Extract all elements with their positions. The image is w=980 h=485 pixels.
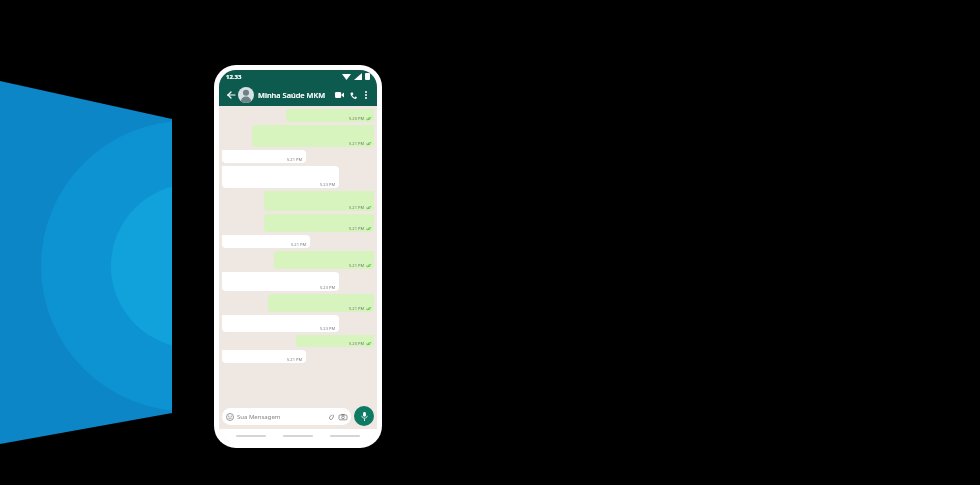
staticText: 5.21 PM [287, 357, 303, 362]
button[interactable]: Contact avatar [238, 87, 254, 103]
button[interactable]: Call [346, 88, 360, 102]
button[interactable]: 5.21 PM [252, 125, 374, 147]
staticText: 5.21 PM [349, 263, 365, 268]
staticText: 5.20 PM [349, 116, 365, 121]
staticText: Sua Mensagem [237, 413, 281, 421]
button[interactable]: 5.21 PM [264, 191, 374, 211]
staticText: Minha Saúde MKM [258, 90, 326, 100]
button[interactable]: Sua Mensagem [222, 408, 351, 425]
button[interactable]: 5.23 PM [222, 166, 339, 188]
staticText: 5.21 PM [349, 141, 365, 146]
button[interactable]: Video call [332, 88, 346, 102]
staticText: 5.21 PM [287, 157, 303, 162]
button[interactable]: Voice message [354, 406, 374, 426]
button[interactable]: 5.20 PM [296, 335, 374, 347]
button[interactable]: 5.21 PM [222, 150, 306, 163]
button[interactable]: 5.23 PM [222, 315, 339, 332]
staticText: 5.21 PM [291, 242, 307, 247]
button[interactable]: 5.21 PM [274, 251, 374, 269]
other: Attach [327, 413, 335, 421]
button[interactable]: 5.21 PM [222, 235, 310, 248]
other: Camera [339, 413, 347, 421]
button[interactable]: Back [224, 88, 237, 101]
staticText: 5.21 PM [349, 226, 365, 231]
staticText: 5.21 PM [349, 205, 365, 210]
staticText: 5.20 PM [349, 341, 365, 346]
button[interactable]: 5.23 PM [222, 272, 339, 291]
staticText: 5.21 PM [349, 306, 365, 311]
staticText: 5.23 PM [320, 285, 336, 290]
button[interactable]: 5.20 PM [286, 109, 374, 122]
staticText: 5.23 PM [320, 182, 336, 187]
button[interactable]: 5.21 PM [222, 350, 306, 363]
button[interactable]: 5.21 PM [264, 214, 374, 232]
button[interactable]: 5.21 PM [268, 294, 374, 312]
staticText: 5.23 PM [320, 326, 336, 331]
button[interactable]: More options [360, 89, 372, 101]
staticText: 12.33 [226, 73, 242, 81]
